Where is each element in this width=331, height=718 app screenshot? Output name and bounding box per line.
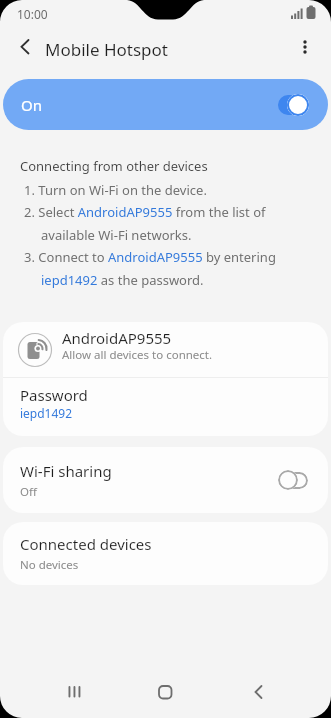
staticText: 10:00 [17, 6, 48, 22]
staticText: No devices [20, 557, 79, 573]
staticText: AndroidAP9555 [62, 328, 172, 348]
staticText: Password [20, 385, 88, 405]
button[interactable] [3, 322, 328, 377]
button[interactable]: Wi-Fi sharing [3, 447, 328, 513]
staticText: 1. Turn on Wi-Fi on the device. [24, 181, 207, 199]
staticText: Connecting from other devices [20, 157, 208, 175]
staticText: Wi-Fi sharing [20, 461, 112, 481]
button[interactable]: Connected devices [3, 522, 328, 585]
button[interactable]: On [3, 79, 328, 130]
staticText: On [21, 95, 42, 115]
staticText: Mobile Hotspot [45, 38, 168, 61]
staticText: 3. Connect to AndroidAP9555 by entering [24, 248, 276, 266]
button[interactable] [3, 377, 328, 436]
button[interactable] [10, 35, 38, 63]
staticText: Connected devices [20, 534, 152, 554]
button[interactable] [293, 35, 317, 59]
staticText: Allow all devices to connect. [62, 347, 213, 363]
staticText: Off [20, 484, 37, 500]
staticText: iepd1492 [20, 405, 73, 421]
staticText: available Wi-Fi networks. [41, 226, 192, 244]
button[interactable] [247, 680, 271, 704]
button[interactable] [62, 680, 86, 704]
staticText: 2. Select AndroidAP9555 from the list of [24, 203, 266, 221]
staticText: iepd1492 as the password. [41, 271, 204, 289]
button[interactable] [153, 680, 177, 704]
